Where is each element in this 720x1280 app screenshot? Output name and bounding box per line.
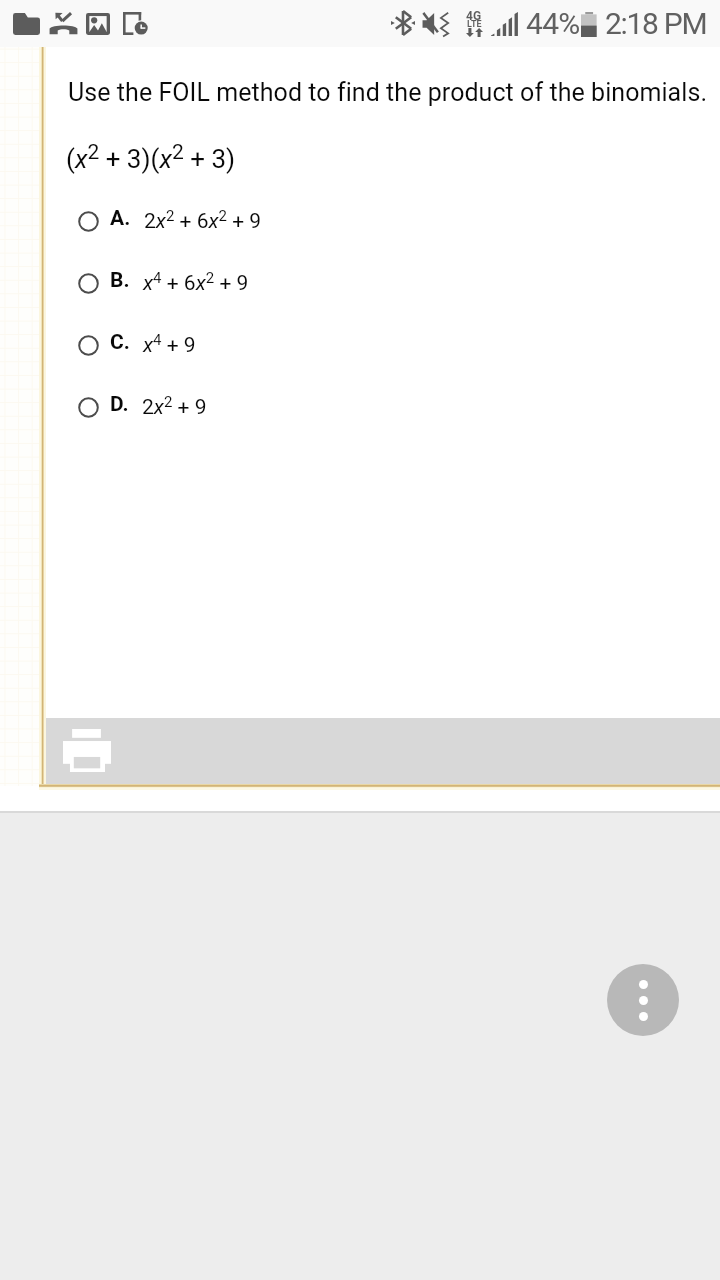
staticText: C.: [110, 330, 130, 355]
staticText: x4 + 9: [143, 331, 196, 357]
button[interactable]: C.: [78, 325, 638, 365]
staticText: (x2 + 3)(x2 + 3): [66, 140, 236, 174]
staticText: D.: [110, 392, 129, 417]
staticText: Use the FOIL method to find the product …: [68, 78, 708, 107]
other: Print: [63, 729, 111, 772]
button[interactable]: More options: [607, 964, 679, 1036]
button[interactable]: D.: [78, 387, 638, 427]
staticText: B.: [110, 268, 130, 293]
button[interactable]: B.: [78, 263, 638, 303]
staticText: 44%: [526, 6, 580, 41]
staticText: 2:18 PM: [605, 6, 707, 41]
button[interactable]: A.: [78, 201, 638, 241]
staticText: x4 + 6x2 + 9: [143, 269, 249, 295]
staticText: 2x2 + 6x2 + 9: [144, 207, 262, 233]
staticText: LTE: [467, 19, 482, 30]
staticText: 2x2 + 9: [142, 393, 207, 419]
staticText: A.: [110, 206, 131, 231]
staticText: 4G: [466, 9, 482, 23]
button[interactable]: Print: [43, 718, 720, 785]
